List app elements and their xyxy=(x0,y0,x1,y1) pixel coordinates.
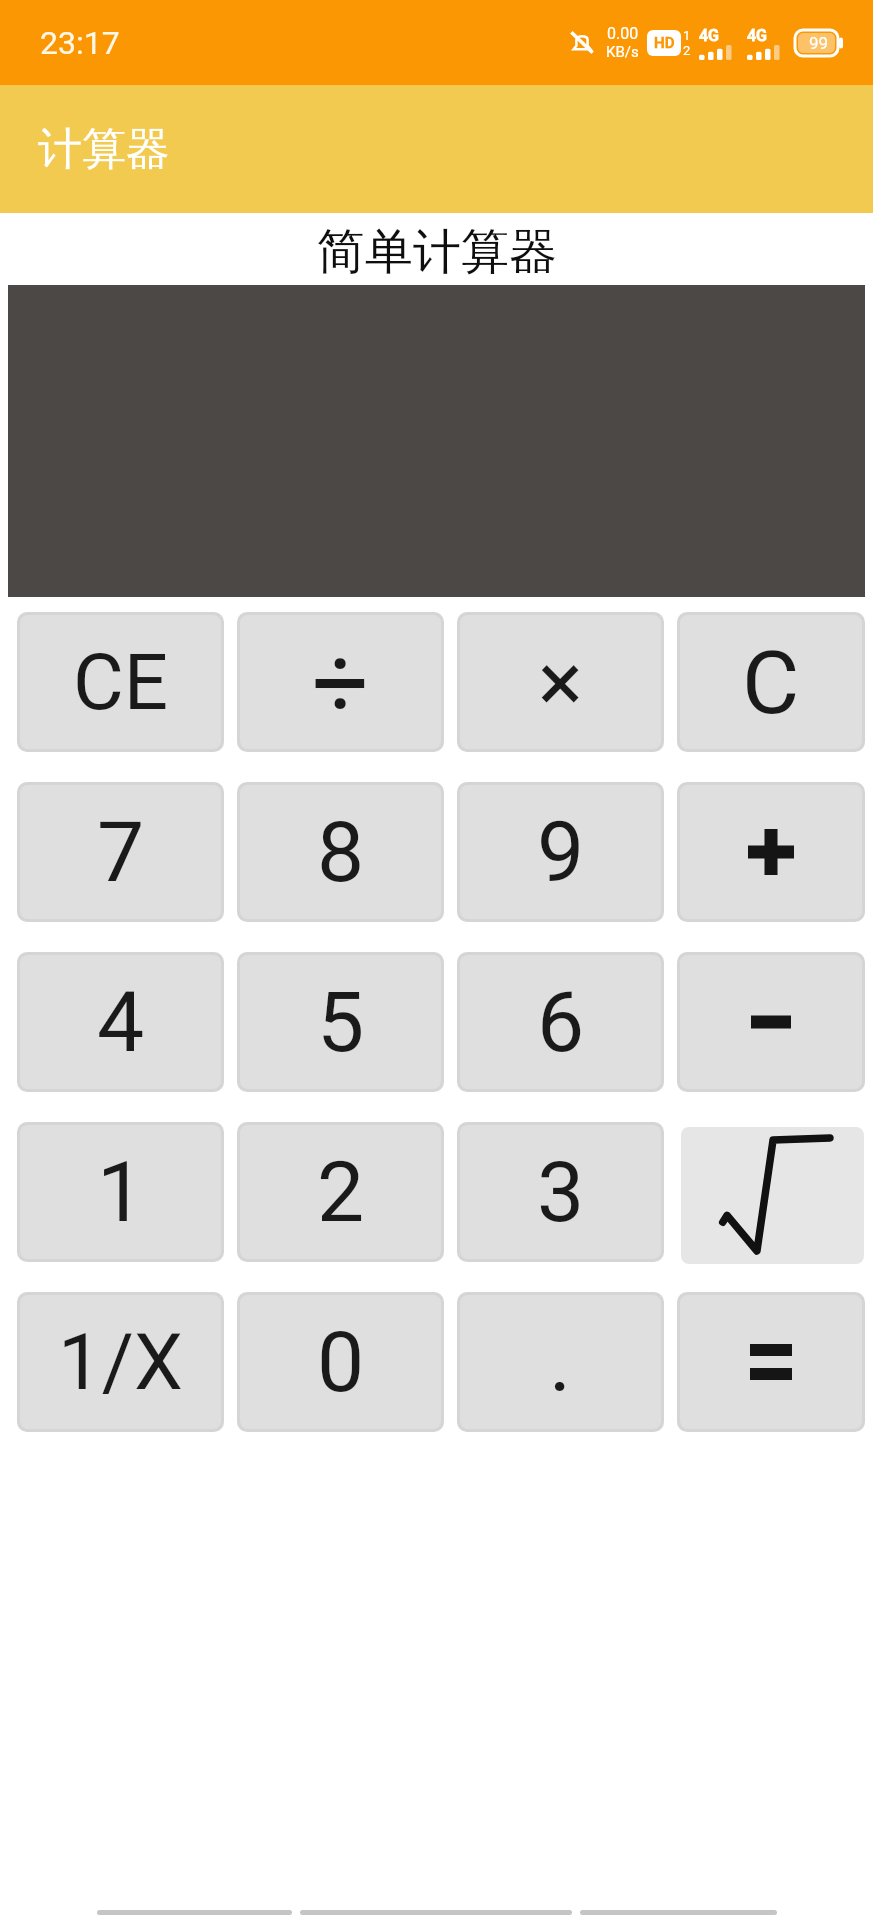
button[interactable]: × xyxy=(457,612,664,752)
staticText: 6 xyxy=(537,973,585,1071)
button[interactable]: 0 xyxy=(237,1292,444,1432)
staticText: 4 xyxy=(97,973,145,1071)
button[interactable]: 2 xyxy=(237,1122,444,1262)
button[interactable]: 3 xyxy=(457,1122,664,1262)
staticText: 2 xyxy=(683,43,691,58)
staticText: 0.00 xyxy=(607,24,639,43)
staticText: 2 xyxy=(317,1143,365,1241)
staticText: . xyxy=(549,1313,572,1411)
button[interactable]: . xyxy=(457,1292,664,1432)
staticText: 3 xyxy=(537,1143,585,1241)
staticText: 1 xyxy=(683,28,691,43)
staticText: 0 xyxy=(317,1313,365,1411)
button[interactable]: 9 xyxy=(457,782,664,922)
staticText: HD xyxy=(654,34,675,52)
button[interactable]: 1 xyxy=(17,1122,224,1262)
staticText: 99 xyxy=(809,33,829,53)
button[interactable]: 7 xyxy=(17,782,224,922)
staticText: 5 xyxy=(317,973,365,1071)
button[interactable]: 5 xyxy=(237,952,444,1092)
button[interactable] xyxy=(677,952,865,1092)
staticText: 23:17 xyxy=(40,24,120,62)
button[interactable]: 8 xyxy=(237,782,444,922)
staticText: × xyxy=(538,633,583,731)
staticText: CE xyxy=(73,637,169,728)
staticText: 简单计算器 xyxy=(317,222,557,282)
staticText: 4G xyxy=(699,26,719,45)
staticText: C xyxy=(742,631,800,734)
button[interactable]: 4 xyxy=(17,952,224,1092)
staticText: 4G xyxy=(747,26,767,45)
staticText: 7 xyxy=(97,803,145,901)
staticText: KB/s xyxy=(606,43,639,61)
staticText: 9 xyxy=(537,803,585,901)
staticText: 1 xyxy=(97,1143,145,1241)
button[interactable]: ÷ xyxy=(237,612,444,752)
staticText: 计算器 xyxy=(38,122,170,177)
button[interactable] xyxy=(681,1127,864,1264)
staticText: 8 xyxy=(317,803,365,901)
button[interactable]: CE xyxy=(17,612,224,752)
button[interactable] xyxy=(677,782,865,922)
button[interactable]: 1/X xyxy=(17,1292,224,1432)
button[interactable] xyxy=(677,1292,865,1432)
staticText: 1/X xyxy=(58,1317,183,1408)
button[interactable]: 6 xyxy=(457,952,664,1092)
button[interactable]: C xyxy=(677,612,865,752)
staticText: ÷ xyxy=(312,624,370,741)
